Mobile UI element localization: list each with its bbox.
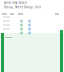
staticText: Group, Sheet Group, Unit: [4, 5, 41, 9]
staticText: Send Time-Sliced: [4, 1, 27, 4]
